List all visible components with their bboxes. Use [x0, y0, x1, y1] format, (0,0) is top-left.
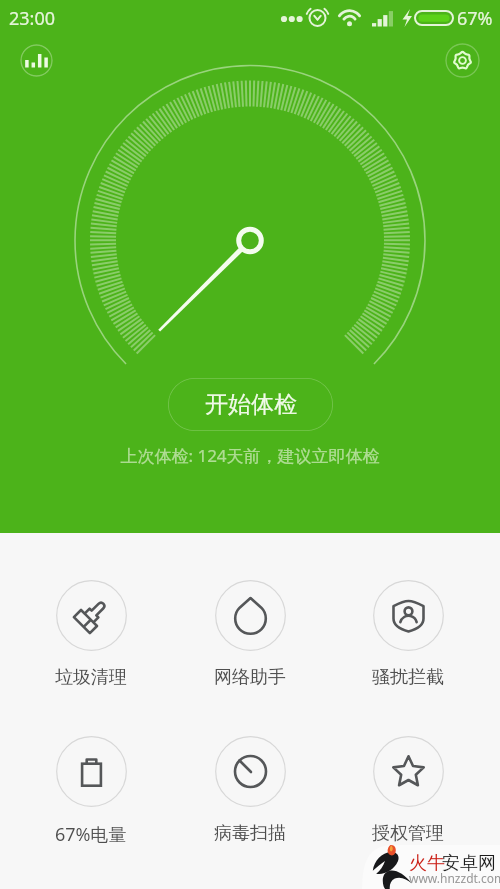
button[interactable]: 骚扰拦截	[348, 580, 468, 700]
staticText: 火牛	[409, 852, 445, 875]
staticText: 安卓网	[442, 852, 496, 875]
button[interactable]: 开始体检	[168, 378, 333, 431]
staticText: 67%	[457, 6, 493, 31]
staticText: 开始体检	[205, 390, 297, 419]
staticText: 23:00	[9, 6, 56, 31]
staticText: 67%电量	[55, 822, 127, 847]
staticText: www.hnzzdt.com	[409, 870, 500, 886]
button[interactable]: 授权管理	[348, 736, 468, 856]
staticText: 病毒扫描	[214, 822, 286, 845]
button[interactable]: 网络助手	[190, 580, 310, 700]
staticText: 授权管理	[372, 822, 444, 845]
staticText: 上次体检: 124天前，建议立即体检	[120, 444, 380, 467]
staticText: 骚扰拦截	[372, 666, 444, 689]
staticText: 垃圾清理	[55, 666, 127, 689]
button[interactable]: Statistics	[20, 44, 53, 77]
button[interactable]: Settings	[445, 43, 480, 78]
button[interactable]: 垃圾清理	[31, 580, 151, 700]
button[interactable]: 67%电量	[31, 736, 151, 856]
button[interactable]: 病毒扫描	[190, 736, 310, 856]
staticText: 网络助手	[214, 666, 286, 689]
